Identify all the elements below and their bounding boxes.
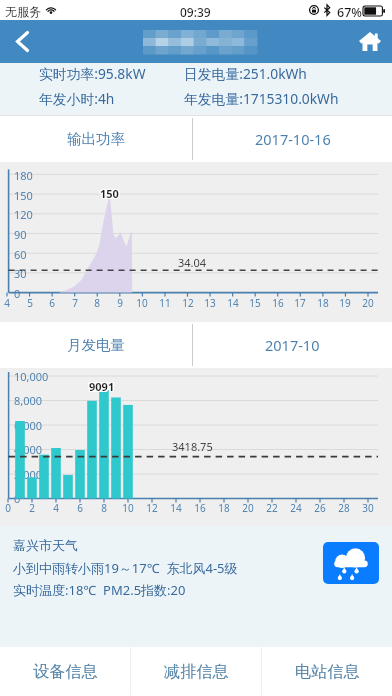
staticText: 9091 [89, 380, 115, 395]
staticText: 设备信息 [33, 661, 98, 681]
button[interactable]: 电站信息 [262, 647, 392, 695]
staticText: 12 [180, 296, 196, 310]
button[interactable]: 月发电量 [0, 322, 192, 368]
staticText: 18 [315, 296, 331, 310]
staticText: 2017-10-16 [255, 129, 331, 149]
button[interactable]: 输出功率 [0, 116, 192, 162]
staticText: 150 [99, 186, 118, 201]
staticText: 实时功率:95.8kW [39, 64, 146, 83]
staticText: 22 [264, 501, 280, 515]
staticText: 9091 [88, 379, 114, 394]
staticText: 4 [0, 296, 15, 310]
staticText: 17 [292, 296, 308, 310]
staticText: 15 [247, 296, 263, 310]
staticText: 年发小时:4h [39, 89, 115, 108]
staticText: 10,000 [14, 369, 49, 384]
staticText: 150 [101, 185, 120, 200]
staticText: 8 [89, 296, 105, 310]
staticText: 9091 [90, 378, 116, 393]
button[interactable]: 2017-10-16 [193, 116, 392, 162]
staticText: 150 [100, 185, 119, 200]
staticText: 4 [48, 501, 64, 515]
staticText: 150 [14, 188, 33, 203]
staticText: 14 [225, 296, 241, 310]
staticText: 16 [270, 296, 286, 310]
staticText: 67% [337, 4, 362, 21]
staticText: 20 [360, 296, 376, 310]
staticText: 11 [157, 296, 173, 310]
staticText: 150 [100, 187, 119, 202]
staticText: 30 [14, 266, 27, 281]
staticText: 日发电量:251.0kWh [184, 64, 307, 83]
button[interactable]: Home [348, 20, 392, 63]
staticText: 24 [288, 501, 304, 515]
button[interactable]: Back [0, 20, 44, 63]
staticText: 9091 [89, 378, 115, 393]
staticText: 19 [337, 296, 353, 310]
staticText: 20 [240, 501, 256, 515]
staticText: 26 [312, 501, 328, 515]
button[interactable]: 2017-10 [193, 322, 392, 368]
staticText: 150 [101, 187, 120, 202]
staticText: 10 [134, 296, 150, 310]
staticText: 6,000 [14, 418, 43, 433]
staticText: 6 [44, 296, 60, 310]
staticText: 120 [14, 207, 33, 222]
staticText: 9091 [90, 379, 116, 394]
staticText: 9091 [90, 380, 116, 395]
staticText: 28 [336, 501, 352, 515]
staticText: 0 [0, 501, 16, 515]
staticText: 电站信息 [295, 661, 360, 681]
staticText: 小到中雨转小雨19～17℃ 东北风4-5级 [13, 559, 238, 577]
staticText: 0 [14, 286, 21, 301]
staticText: 8 [96, 501, 112, 515]
staticText: 无服务 [5, 4, 41, 19]
staticText: 2,000 [14, 467, 43, 482]
staticText: 180 [14, 168, 33, 183]
staticText: 150 [99, 187, 118, 202]
staticText: 10 [120, 501, 136, 515]
staticText: 5 [22, 296, 38, 310]
staticText: 6 [72, 501, 88, 515]
staticText: 150 [100, 186, 119, 201]
staticText: 2 [24, 501, 40, 515]
staticText: 18 [216, 501, 232, 515]
staticText: 16 [192, 501, 208, 515]
staticText: 12 [144, 501, 160, 515]
staticText: 9091 [89, 379, 115, 394]
staticText: 输出功率 [67, 130, 125, 148]
staticText: 9091 [88, 378, 114, 393]
staticText: 150 [99, 185, 118, 200]
staticText: 月发电量 [67, 336, 125, 354]
staticText: 9091 [88, 380, 114, 395]
staticText: 13 [202, 296, 218, 310]
staticText: 年发电量:1715310.0kWh [184, 89, 339, 108]
staticText: 90 [14, 227, 27, 242]
staticText: 34.04 [178, 255, 207, 270]
button[interactable]: Weather [323, 542, 379, 584]
staticText: 14 [168, 501, 184, 515]
button[interactable]: 设备信息 [0, 647, 130, 695]
button[interactable]: 减排信息 [131, 647, 261, 695]
staticText: 7 [67, 296, 83, 310]
staticText: 4,000 [14, 442, 43, 457]
staticText: 0 [14, 491, 21, 506]
staticText: 2017-10 [265, 335, 320, 355]
staticText: 150 [101, 186, 120, 201]
staticText: 09:39 [180, 4, 211, 20]
staticText: 嘉兴市天气 [13, 537, 78, 553]
staticText: 实时温度:18℃ PM2.5指数:20 [13, 581, 186, 599]
staticText: 9 [112, 296, 128, 310]
staticText: 30 [360, 501, 376, 515]
staticText: 60 [14, 247, 27, 262]
staticText: 减排信息 [164, 661, 229, 681]
staticText: 3418.75 [172, 439, 213, 454]
staticText: 8,000 [14, 393, 43, 408]
